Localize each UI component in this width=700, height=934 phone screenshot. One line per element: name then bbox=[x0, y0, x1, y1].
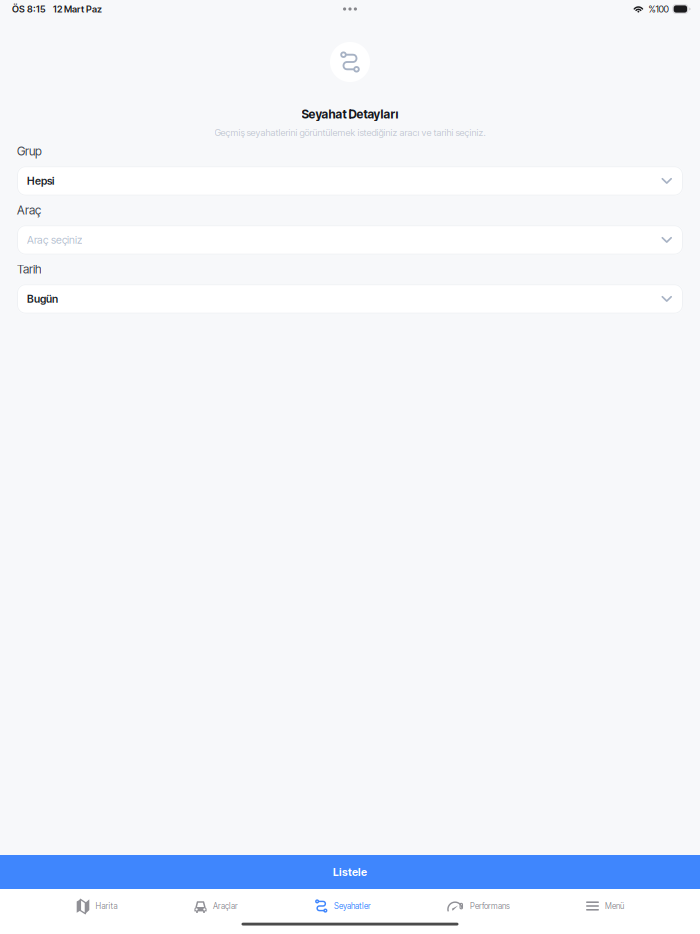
button[interactable]: Menü bbox=[586, 889, 624, 923]
staticText: Seyahat Detayları bbox=[301, 107, 398, 121]
staticText: Araç bbox=[17, 203, 41, 217]
staticText: Hepsi bbox=[27, 175, 54, 187]
button[interactable]: Harita bbox=[76, 889, 117, 923]
staticText: Araçlar bbox=[213, 901, 238, 911]
button[interactable]: Bugün bbox=[17, 284, 683, 314]
staticText: Tarih bbox=[17, 262, 42, 276]
staticText: Seyahatler bbox=[334, 901, 371, 911]
staticText: Araç seçiniz bbox=[27, 234, 82, 246]
button[interactable]: Araçlar bbox=[193, 889, 238, 923]
staticText: Bugün bbox=[27, 293, 58, 305]
staticText: Geçmiş seyahatlerini görüntülemek istedi… bbox=[214, 127, 485, 138]
staticText: 12 Mart Paz bbox=[53, 3, 102, 14]
staticText: Menü bbox=[605, 901, 624, 911]
button[interactable]: Araç seçiniz bbox=[17, 225, 683, 255]
staticText: %100 bbox=[648, 3, 668, 14]
staticText: Listele bbox=[333, 866, 367, 878]
staticText: Performans bbox=[470, 901, 510, 911]
staticText: ÖS 8:15 bbox=[12, 3, 46, 14]
button[interactable]: Performans bbox=[447, 889, 510, 923]
button[interactable]: Seyahatler bbox=[314, 889, 371, 923]
staticText: Grup bbox=[17, 144, 42, 158]
button[interactable]: Hepsi bbox=[17, 166, 683, 196]
button[interactable]: Listele bbox=[0, 855, 700, 889]
staticText: Harita bbox=[95, 901, 117, 911]
